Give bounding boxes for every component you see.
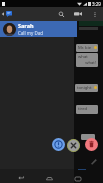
staticText: tonight	[77, 85, 96, 91]
button[interactable]: Mr. bie	[76, 44, 98, 52]
staticText: 3:29	[92, 1, 101, 7]
button[interactable]: Video call	[74, 11, 82, 17]
button[interactable]: Sarah	[0, 21, 77, 37]
button[interactable]: tonight	[75, 84, 98, 92]
button[interactable]: Call information	[52, 138, 65, 151]
button[interactable]: Dismiss	[67, 139, 80, 152]
button[interactable]: Recent apps	[75, 177, 81, 181]
staticText: what guess	[78, 54, 96, 60]
button[interactable]: tired child	[76, 105, 98, 114]
staticText: Call my Dad	[18, 30, 44, 36]
button[interactable]	[81, 134, 95, 140]
staticText: what!	[78, 60, 96, 66]
button[interactable]: More options	[92, 11, 98, 18]
button[interactable]: Navigate up	[0, 10, 5, 18]
button[interactable]: Home	[45, 173, 54, 182]
button[interactable]: what guess	[76, 53, 98, 67]
staticText: Sarah	[18, 22, 34, 29]
staticText: tired child	[78, 106, 96, 112]
staticText: Mr. bie	[78, 45, 96, 51]
button[interactable]: Back	[17, 173, 25, 181]
button[interactable]: Messages	[6, 11, 12, 17]
button[interactable]: Search	[58, 11, 65, 18]
button[interactable]: Delete	[85, 138, 98, 151]
